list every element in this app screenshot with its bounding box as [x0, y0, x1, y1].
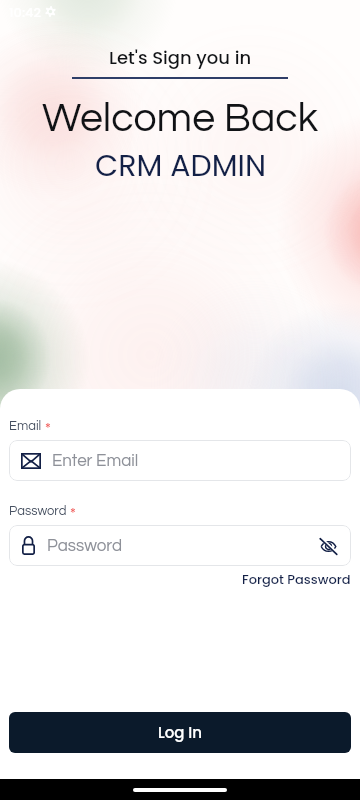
staticText: Password	[47, 537, 316, 555]
staticText: Password	[9, 504, 67, 517]
staticText: Email	[9, 419, 42, 432]
button[interactable]: Log In	[9, 712, 351, 753]
staticText: Enter Email	[52, 452, 139, 470]
staticText: Log In	[158, 722, 202, 743]
other: Settings	[45, 6, 56, 17]
staticText: CRM ADMIN	[95, 145, 266, 187]
button[interactable]: Show password	[316, 534, 340, 558]
staticText: *	[70, 504, 76, 521]
staticText: 10:42	[9, 3, 41, 21]
staticText: *	[45, 419, 51, 436]
staticText: Welcome Back	[42, 97, 319, 139]
button[interactable]: Forgot Password	[242, 570, 351, 588]
button[interactable]: Enter Email	[9, 440, 351, 481]
button[interactable]: Password	[9, 525, 351, 566]
staticText: Let's Sign you in	[109, 45, 252, 70]
